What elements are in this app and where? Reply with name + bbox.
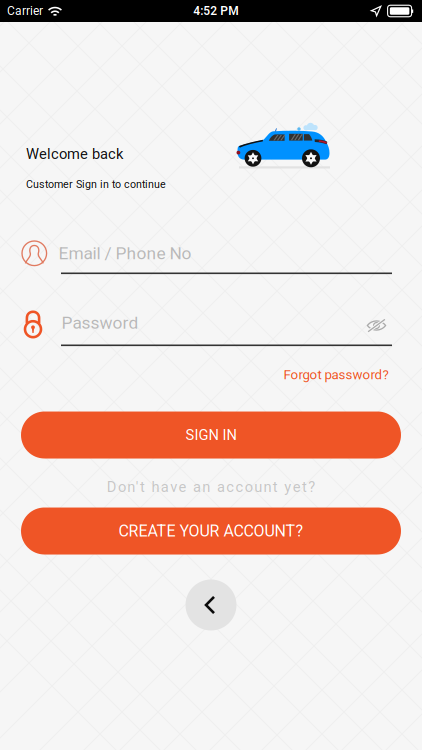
staticText: 4:52 PM: [193, 4, 239, 18]
staticText: Welcome back: [26, 145, 123, 162]
button[interactable]: CREATE YOUR ACCOUNT?: [21, 507, 401, 554]
staticText: Customer Sign in to continue: [26, 178, 166, 190]
staticText: Forgot password?: [283, 367, 388, 382]
staticText: SIGN IN: [185, 427, 236, 443]
staticText: Password: [61, 313, 138, 333]
staticText: CREATE YOUR ACCOUNT?: [118, 522, 303, 540]
button[interactable]: SIGN IN: [21, 411, 401, 458]
staticText: Carrier: [7, 4, 43, 18]
button[interactable]: Show password: [366, 318, 386, 332]
staticText: Don't have an account yet?: [107, 478, 315, 495]
staticText: Email / Phone No: [58, 243, 191, 263]
button[interactable]: Forgot password?: [283, 367, 388, 382]
button[interactable]: Back: [185, 579, 236, 630]
